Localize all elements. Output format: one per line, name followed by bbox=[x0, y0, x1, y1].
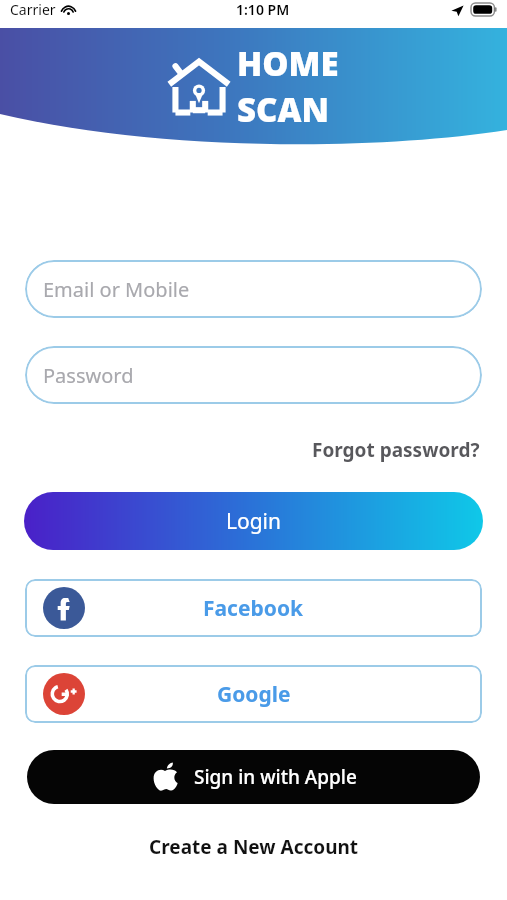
staticText: Email or Mobile bbox=[43, 276, 190, 303]
staticText: Password bbox=[43, 362, 134, 389]
staticText: Forgot password? bbox=[312, 437, 480, 463]
staticText: Login bbox=[226, 507, 282, 536]
staticText: SCAN bbox=[237, 87, 329, 132]
button[interactable]: Forgot password? bbox=[310, 433, 482, 467]
staticText: Create a New Account bbox=[149, 834, 359, 860]
button[interactable]: Login bbox=[24, 492, 483, 550]
button[interactable]: Create a New Account bbox=[145, 830, 363, 864]
staticText: Google bbox=[217, 680, 291, 709]
button[interactable]: Google bbox=[25, 665, 482, 723]
button[interactable]: Email or Mobile bbox=[25, 260, 482, 318]
button[interactable]: Password bbox=[25, 346, 482, 404]
staticText: 1:10 PM bbox=[236, 0, 290, 19]
staticText: HOME bbox=[237, 41, 339, 86]
staticText: Carrier bbox=[10, 0, 56, 19]
staticText: Sign in with Apple bbox=[194, 764, 357, 790]
button[interactable]: Facebook bbox=[25, 579, 482, 637]
staticText: Facebook bbox=[203, 594, 304, 623]
button[interactable]: Sign in with Apple bbox=[27, 750, 480, 804]
